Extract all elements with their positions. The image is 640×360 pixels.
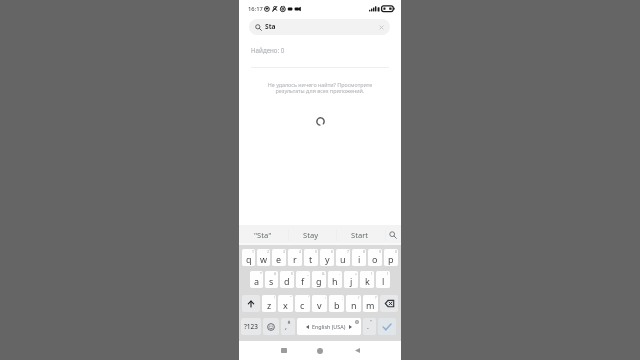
staticText: 16:17 xyxy=(248,5,263,13)
staticText: g xyxy=(316,275,322,287)
staticText: Stay xyxy=(303,230,319,240)
staticText: / xyxy=(358,295,360,300)
staticText: Найдено: 0 xyxy=(251,46,285,54)
button[interactable]: 0 xyxy=(384,249,398,266)
staticText: : xyxy=(325,295,326,300)
button[interactable]: 4 xyxy=(288,249,302,266)
staticText: "Sta" xyxy=(254,230,272,240)
staticText: ; xyxy=(342,295,343,300)
staticText: a xyxy=(254,275,260,287)
button[interactable]: Search xyxy=(384,225,401,245)
staticText: f xyxy=(301,275,305,287)
button[interactable]: "Sta" xyxy=(239,225,287,245)
button[interactable]: Period xyxy=(363,318,376,335)
staticText: 1 xyxy=(252,249,254,254)
staticText: & xyxy=(322,271,325,276)
staticText: k xyxy=(365,275,370,287)
staticText: 5 xyxy=(315,249,317,254)
button[interactable]: ; xyxy=(329,295,344,312)
staticText: , xyxy=(285,322,287,332)
staticText: n xyxy=(351,299,357,311)
button[interactable]: / xyxy=(346,295,361,312)
button[interactable]: + xyxy=(344,271,358,288)
staticText: z xyxy=(267,299,272,311)
staticText: ) xyxy=(387,271,389,276)
staticText: * xyxy=(260,271,262,276)
staticText: English (USA) xyxy=(312,323,346,330)
staticText: x xyxy=(283,299,288,311)
staticText: 3 xyxy=(283,249,285,254)
button[interactable]: Back xyxy=(344,341,370,360)
button[interactable]: ! xyxy=(262,295,276,312)
button[interactable]: 1 xyxy=(242,249,255,266)
staticText: " xyxy=(290,295,292,300)
button[interactable]: _ xyxy=(296,271,310,288)
button[interactable]: $ xyxy=(280,271,294,288)
staticText: 9 xyxy=(379,249,381,254)
staticText: $ xyxy=(291,271,293,276)
staticText: s xyxy=(269,275,274,287)
button[interactable]: Shift xyxy=(242,295,260,312)
staticText: q xyxy=(246,253,252,265)
staticText: e xyxy=(276,253,282,265)
staticText: r xyxy=(293,253,297,265)
button[interactable]: " xyxy=(278,295,293,312)
button[interactable]: 8 xyxy=(352,249,366,266)
button[interactable]: Recents xyxy=(271,341,297,360)
staticText: " xyxy=(370,319,372,325)
button[interactable]: Emoji xyxy=(263,318,279,335)
button[interactable]: & xyxy=(312,271,326,288)
staticText: i xyxy=(358,253,361,265)
staticText: 7 xyxy=(347,249,349,254)
button[interactable]: 6 xyxy=(320,249,334,266)
staticText: m xyxy=(366,299,375,311)
button[interactable]: ( xyxy=(360,271,374,288)
staticText: 8 xyxy=(363,249,365,254)
staticText: b xyxy=(334,299,340,311)
button[interactable]: Backspace xyxy=(380,295,398,312)
button[interactable]: ) xyxy=(376,271,390,288)
button[interactable]: ' xyxy=(295,295,310,312)
button[interactable]: # xyxy=(265,271,278,288)
staticText: d xyxy=(284,275,290,287)
button[interactable]: Sta xyxy=(249,19,390,35)
staticText: 6 xyxy=(331,249,333,254)
staticText: Не удалось ничего найти? Просмотрите рез… xyxy=(249,81,391,94)
staticText: u xyxy=(340,253,346,265)
button[interactable]: Start xyxy=(335,225,384,245)
staticText: _ xyxy=(307,271,309,276)
staticText: # xyxy=(274,271,277,276)
staticText: 4 xyxy=(299,249,301,254)
staticText: v xyxy=(317,299,322,311)
staticText: ! xyxy=(274,295,275,300)
staticText: 2 xyxy=(267,249,269,254)
button[interactable]: Space xyxy=(297,318,361,335)
staticText: Start xyxy=(351,230,369,240)
staticText: ?123 xyxy=(244,322,258,331)
button[interactable]: 3 xyxy=(272,249,286,266)
staticText: ( xyxy=(371,271,373,276)
staticText: + xyxy=(355,271,357,276)
button[interactable]: * xyxy=(250,271,263,288)
staticText: p xyxy=(388,253,394,265)
button[interactable]: 7 xyxy=(336,249,350,266)
button[interactable]: Home xyxy=(307,341,333,360)
staticText: t xyxy=(309,253,313,265)
button[interactable]: 9 xyxy=(368,249,382,266)
button[interactable]: - xyxy=(328,271,342,288)
button[interactable]: Enter xyxy=(378,318,396,335)
button[interactable]: 2 xyxy=(257,249,270,266)
button[interactable]: Stay xyxy=(287,225,335,245)
staticText: - xyxy=(339,271,341,276)
button[interactable]: ? xyxy=(363,295,378,312)
staticText: ? xyxy=(375,295,377,300)
button[interactable]: Symbols xyxy=(241,318,261,335)
staticText: 0 xyxy=(395,249,397,254)
staticText: h xyxy=(332,275,338,287)
staticText: Sta xyxy=(265,22,276,31)
staticText: w xyxy=(260,253,268,265)
button[interactable]: 5 xyxy=(304,249,318,266)
button[interactable]: : xyxy=(312,295,327,312)
button[interactable]: Comma xyxy=(281,318,295,335)
staticText: ' xyxy=(308,295,309,300)
